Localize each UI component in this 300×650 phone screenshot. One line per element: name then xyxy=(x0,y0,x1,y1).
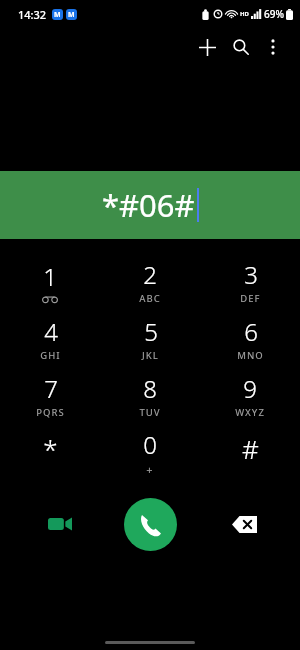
button[interactable]: More options xyxy=(258,32,288,62)
staticText: 5 xyxy=(144,315,158,348)
staticText: *#06# xyxy=(102,184,195,226)
staticText: 8 xyxy=(143,372,157,405)
staticText: DEF xyxy=(240,292,261,305)
button[interactable]: 0 xyxy=(100,424,200,481)
button[interactable]: 8 xyxy=(100,367,200,424)
staticText: 7 xyxy=(44,372,58,405)
button[interactable]: * xyxy=(0,424,100,481)
button[interactable]: Add contact xyxy=(190,30,224,64)
button[interactable]: Video call xyxy=(38,502,82,546)
button[interactable]: # xyxy=(200,424,300,481)
staticText: 6 xyxy=(244,315,258,348)
staticText: + xyxy=(146,462,154,477)
button[interactable]: 5 xyxy=(100,310,200,367)
button[interactable]: 6 xyxy=(200,310,300,367)
staticText: ABC xyxy=(139,292,161,305)
staticText: 0 xyxy=(143,428,157,461)
staticText: M xyxy=(54,10,61,20)
staticText: WXYZ xyxy=(235,406,265,419)
staticText: JKL xyxy=(142,349,159,362)
button[interactable]: 2 xyxy=(100,253,200,310)
button[interactable]: 7 xyxy=(0,367,100,424)
button[interactable]: *#06# xyxy=(0,171,300,239)
button[interactable]: 4 xyxy=(0,310,100,367)
button[interactable]: 3 xyxy=(200,253,300,310)
staticText: 2 xyxy=(143,258,157,291)
staticText: HD xyxy=(240,10,249,18)
button[interactable]: 1 xyxy=(0,253,100,310)
staticText: # xyxy=(242,431,259,466)
button[interactable]: Call xyxy=(124,498,177,551)
staticText: TUV xyxy=(139,406,161,419)
staticText: PQRS xyxy=(36,406,65,419)
staticText: 4 xyxy=(44,315,58,348)
staticText: * xyxy=(43,431,58,466)
staticText: 3 xyxy=(244,258,258,291)
staticText: M xyxy=(68,10,75,20)
button[interactable]: 9 xyxy=(200,367,300,424)
staticText: 69% xyxy=(264,7,284,21)
staticText: GHI xyxy=(40,349,61,362)
button[interactable]: Search xyxy=(224,30,258,64)
staticText: MNO xyxy=(237,349,264,362)
staticText: 14:32 xyxy=(18,7,47,22)
staticText: 9 xyxy=(243,372,257,405)
button[interactable]: Backspace xyxy=(222,502,266,546)
staticText: 1 xyxy=(43,260,57,293)
